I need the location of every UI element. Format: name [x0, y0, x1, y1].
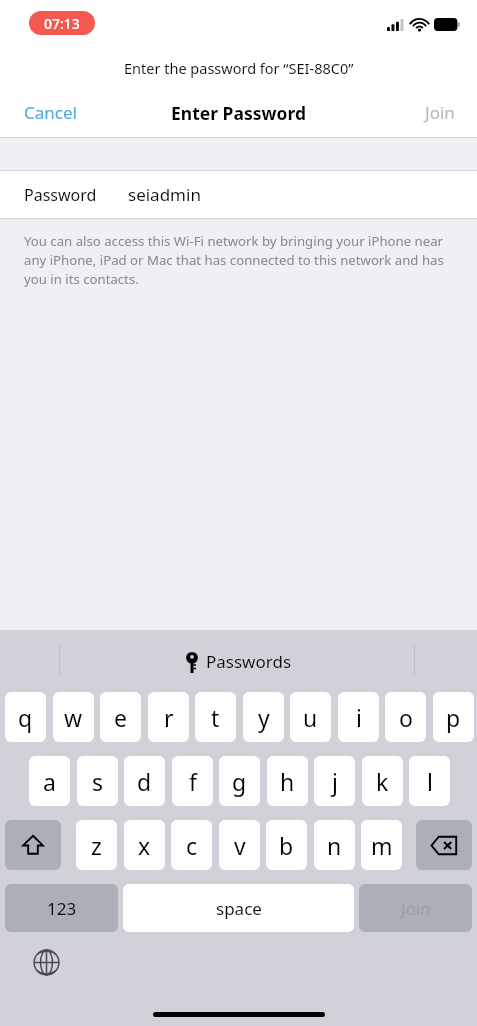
- staticText: z: [91, 830, 102, 861]
- staticText: j: [332, 766, 338, 797]
- staticText: Cancel: [24, 101, 77, 124]
- button[interactable]: k: [362, 756, 403, 806]
- staticText: b: [279, 830, 294, 861]
- staticText: k: [376, 766, 389, 797]
- button[interactable]: i: [338, 692, 379, 742]
- staticText: a: [43, 766, 56, 797]
- button[interactable]: v: [219, 820, 260, 870]
- staticText: c: [186, 830, 198, 861]
- staticText: e: [114, 702, 127, 733]
- button[interactable]: Password: [0, 171, 477, 218]
- button[interactable]: q: [5, 692, 46, 742]
- staticText: q: [18, 702, 33, 733]
- button[interactable]: Change keyboard language: [30, 946, 62, 978]
- staticText: m: [371, 830, 393, 861]
- staticText: o: [399, 702, 413, 733]
- staticText: h: [280, 766, 295, 797]
- button[interactable]: m: [361, 820, 402, 870]
- button[interactable]: l: [409, 756, 450, 806]
- button[interactable]: Join: [403, 91, 477, 134]
- button[interactable]: r: [148, 692, 189, 742]
- staticText: v: [234, 830, 246, 861]
- staticText: 07:13: [44, 14, 80, 33]
- staticText: Enter the password for “SEI-88C0”: [124, 58, 354, 78]
- staticText: n: [327, 830, 342, 861]
- button[interactable]: x: [124, 820, 165, 870]
- button[interactable]: u: [290, 692, 331, 742]
- button[interactable]: n: [314, 820, 355, 870]
- button[interactable]: Shift: [5, 820, 61, 870]
- staticText: u: [303, 702, 318, 733]
- button[interactable]: t: [195, 692, 236, 742]
- button[interactable]: a: [29, 756, 70, 806]
- button[interactable]: space: [123, 884, 354, 932]
- staticText: You can also access this Wi-Fi network b…: [24, 232, 453, 288]
- button[interactable]: z: [76, 820, 117, 870]
- button[interactable]: j: [314, 756, 355, 806]
- button[interactable]: c: [171, 820, 212, 870]
- staticText: t: [211, 702, 220, 733]
- button[interactable]: h: [267, 756, 308, 806]
- staticText: l: [427, 766, 433, 797]
- staticText: seiadmin: [128, 183, 201, 206]
- button[interactable]: o: [385, 692, 426, 742]
- button[interactable]: y: [243, 692, 284, 742]
- staticText: y: [258, 702, 270, 733]
- button[interactable]: Cancel: [0, 91, 101, 134]
- staticText: Password: [24, 184, 97, 206]
- button[interactable]: Backspace: [416, 820, 472, 870]
- staticText: 123: [47, 897, 77, 920]
- staticText: p: [446, 702, 461, 733]
- staticText: f: [189, 766, 197, 797]
- staticText: x: [138, 830, 151, 861]
- staticText: d: [137, 766, 152, 797]
- button[interactable]: f: [172, 756, 213, 806]
- button[interactable]: 123: [5, 884, 118, 932]
- staticText: s: [92, 766, 104, 797]
- staticText: w: [64, 702, 83, 733]
- button[interactable]: Join: [359, 884, 472, 932]
- button[interactable]: b: [266, 820, 307, 870]
- button[interactable]: d: [124, 756, 165, 806]
- button[interactable]: p: [433, 692, 474, 742]
- staticText: Join: [425, 101, 455, 124]
- button[interactable]: s: [77, 756, 118, 806]
- button[interactable]: g: [219, 756, 260, 806]
- button[interactable]: Passwords: [177, 642, 300, 681]
- staticText: Passwords: [206, 650, 292, 673]
- staticText: r: [164, 702, 174, 733]
- button[interactable]: w: [53, 692, 94, 742]
- staticText: Enter Password: [171, 101, 306, 125]
- staticText: i: [356, 702, 362, 733]
- staticText: space: [216, 897, 262, 920]
- staticText: Join: [401, 897, 431, 920]
- button[interactable]: e: [100, 692, 141, 742]
- staticText: g: [232, 766, 247, 797]
